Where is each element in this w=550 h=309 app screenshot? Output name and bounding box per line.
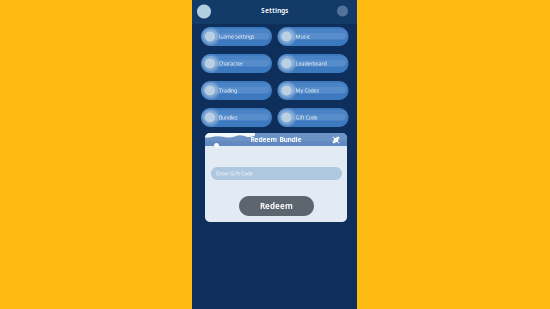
button[interactable]: Game Settings (201, 27, 272, 46)
staticText: Redeem Bundle (250, 135, 301, 144)
staticText: Gift Code (295, 114, 317, 121)
staticText: Redeem (260, 201, 293, 211)
button[interactable]: Close (330, 134, 342, 146)
staticText: Leaderboard (295, 60, 326, 67)
button[interactable]: Bundles (201, 108, 272, 127)
button[interactable]: Gift Code (277, 108, 348, 127)
button[interactable]: Back (193, 0, 215, 22)
staticText: Bundles (219, 114, 238, 121)
staticText: My Codes (295, 87, 319, 94)
button[interactable]: Music (277, 27, 348, 46)
staticText: Character (219, 60, 243, 67)
button[interactable]: More (333, 1, 352, 20)
button[interactable]: My Codes (277, 81, 348, 100)
button[interactable]: Trading (201, 81, 272, 100)
staticText: Trading (219, 87, 237, 94)
staticText: Enter Gift Code (216, 170, 253, 177)
button[interactable]: Redeem (239, 196, 314, 216)
button[interactable]: Character (201, 54, 272, 73)
staticText: Game Settings (219, 33, 255, 40)
staticText: Music (295, 33, 310, 40)
button[interactable]: Leaderboard (277, 54, 348, 73)
staticText: Settings (261, 6, 288, 15)
